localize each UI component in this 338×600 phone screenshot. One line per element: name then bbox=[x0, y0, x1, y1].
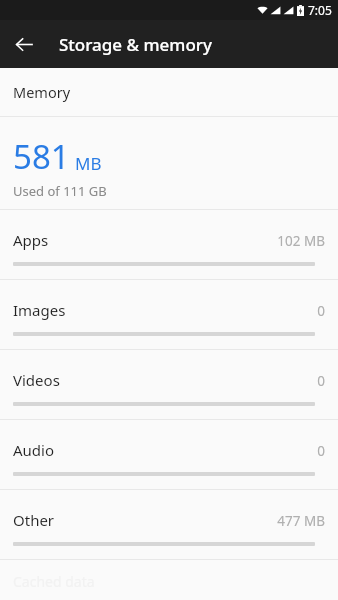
button[interactable]: 581 bbox=[0, 117, 338, 209]
staticText: 0 bbox=[317, 302, 325, 320]
staticText: 0 bbox=[317, 372, 325, 390]
button[interactable]: Back bbox=[6, 26, 42, 62]
staticText: Used of 111 GB bbox=[13, 182, 107, 200]
staticText: 7:05 bbox=[308, 2, 332, 18]
staticText: 581 bbox=[13, 134, 70, 179]
staticText: 0 bbox=[317, 442, 325, 460]
staticText: Audio bbox=[13, 440, 55, 460]
staticText: Images bbox=[13, 300, 66, 320]
staticText: Apps bbox=[13, 230, 49, 250]
button[interactable]: Apps bbox=[0, 210, 338, 279]
staticText: Other bbox=[13, 510, 55, 530]
staticText: Videos bbox=[13, 370, 60, 390]
staticText: 477 MB bbox=[277, 512, 325, 530]
staticText: 102 MB bbox=[277, 232, 325, 250]
button[interactable]: Videos bbox=[0, 350, 338, 419]
staticText: MB bbox=[75, 152, 102, 175]
button[interactable]: Other bbox=[0, 490, 338, 559]
button[interactable]: Audio bbox=[0, 420, 338, 489]
staticText: Storage & memory bbox=[59, 33, 212, 56]
button[interactable]: Images bbox=[0, 280, 338, 349]
staticText: Memory bbox=[13, 82, 71, 102]
